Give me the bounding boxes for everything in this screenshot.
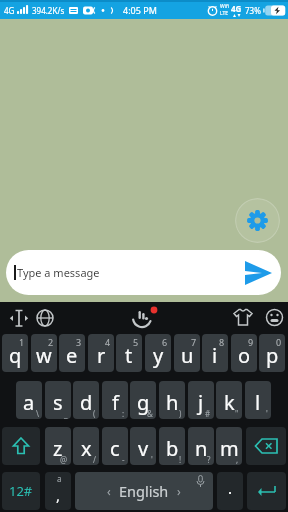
button[interactable]: e bbox=[59, 334, 85, 372]
staticText: 6 bbox=[162, 336, 168, 348]
button[interactable]: Type a message bbox=[6, 250, 281, 295]
button[interactable]: b bbox=[159, 427, 185, 465]
button[interactable]: , bbox=[45, 472, 71, 510]
staticText: ' bbox=[266, 408, 268, 419]
button[interactable]: l bbox=[245, 381, 271, 419]
staticText: 4G bbox=[231, 3, 242, 14]
staticText: & bbox=[147, 408, 153, 419]
staticText: o bbox=[238, 342, 251, 369]
staticText: Wifi bbox=[220, 3, 229, 10]
button[interactable]: ‹ bbox=[75, 472, 213, 510]
staticText: p bbox=[266, 342, 279, 369]
staticText: 2 bbox=[48, 336, 54, 348]
staticText: y bbox=[153, 342, 164, 369]
staticText: , bbox=[236, 454, 239, 465]
button[interactable]: d bbox=[73, 381, 99, 419]
button[interactable]: j bbox=[188, 381, 214, 419]
button[interactable]: w bbox=[31, 334, 57, 372]
staticText: : bbox=[122, 408, 125, 419]
button[interactable] bbox=[36, 309, 54, 327]
staticText: English bbox=[119, 481, 169, 501]
staticText: ‹ bbox=[107, 483, 111, 499]
button[interactable]: i bbox=[202, 334, 228, 372]
button[interactable]: k bbox=[216, 381, 242, 419]
staticText: 1 bbox=[19, 336, 25, 348]
button[interactable]: m bbox=[216, 427, 242, 465]
staticText: 4 bbox=[105, 336, 111, 348]
button[interactable]: t bbox=[116, 334, 142, 372]
button[interactable]: r bbox=[88, 334, 114, 372]
staticText: z bbox=[53, 435, 63, 462]
staticText: 5 bbox=[133, 336, 139, 348]
staticText: t bbox=[125, 342, 133, 369]
button[interactable]: q bbox=[2, 334, 28, 372]
staticText: 8 bbox=[219, 336, 225, 348]
staticText: LTE bbox=[220, 10, 229, 17]
staticText: e bbox=[66, 342, 78, 369]
button[interactable] bbox=[265, 308, 284, 327]
button[interactable]: y bbox=[145, 334, 171, 372]
button[interactable]: o bbox=[231, 334, 257, 372]
staticText: f bbox=[112, 389, 119, 416]
staticText: 4G bbox=[4, 5, 15, 16]
staticText: c bbox=[110, 435, 120, 462]
staticText: / bbox=[93, 454, 96, 465]
staticText: 394.2K/s bbox=[32, 5, 65, 16]
staticText: i bbox=[212, 342, 218, 369]
staticText: 4:05 PM bbox=[123, 4, 157, 16]
button[interactable] bbox=[7, 306, 31, 330]
staticText: d bbox=[80, 389, 93, 416]
button[interactable]: z bbox=[45, 427, 71, 465]
staticText: n bbox=[195, 435, 208, 462]
button[interactable]: v bbox=[130, 427, 156, 465]
button[interactable]: x bbox=[73, 427, 99, 465]
staticText: ' bbox=[151, 454, 153, 465]
staticText: # bbox=[205, 408, 211, 419]
staticText: ) bbox=[179, 408, 182, 419]
button[interactable]: h bbox=[159, 381, 185, 419]
button[interactable]: c bbox=[102, 427, 128, 465]
staticText: - bbox=[122, 454, 125, 465]
staticText: a bbox=[57, 473, 62, 484]
button[interactable]: g bbox=[130, 381, 156, 419]
staticText: Type a message bbox=[17, 265, 100, 280]
staticText: @ bbox=[60, 454, 68, 465]
button[interactable]: f bbox=[102, 381, 128, 419]
button[interactable]: s bbox=[45, 381, 71, 419]
staticText: b bbox=[166, 435, 179, 462]
staticText: " bbox=[235, 408, 239, 419]
button[interactable]: 12# bbox=[2, 472, 40, 510]
button[interactable] bbox=[233, 308, 253, 327]
staticText: v bbox=[138, 435, 149, 462]
staticText: 7 bbox=[191, 336, 197, 348]
staticText: w bbox=[36, 342, 52, 369]
staticText: › bbox=[177, 483, 181, 499]
staticText: m bbox=[220, 435, 239, 462]
staticText: q bbox=[9, 342, 22, 369]
button[interactable] bbox=[2, 427, 40, 465]
staticText: \ bbox=[36, 408, 39, 419]
staticText: j bbox=[198, 389, 204, 416]
staticText: k bbox=[224, 389, 235, 416]
staticText: 73% bbox=[245, 5, 261, 16]
staticText: g bbox=[137, 389, 150, 416]
button[interactable] bbox=[217, 472, 243, 510]
button[interactable] bbox=[246, 427, 286, 465]
button[interactable] bbox=[247, 472, 286, 510]
staticText: a bbox=[23, 389, 35, 416]
staticText: _ bbox=[64, 408, 68, 419]
staticText: 12# bbox=[9, 482, 33, 500]
button[interactable]: a bbox=[16, 381, 42, 419]
staticText: ( bbox=[93, 408, 96, 419]
button[interactable]: u bbox=[174, 334, 200, 372]
button[interactable] bbox=[130, 305, 158, 331]
staticText: s bbox=[53, 389, 63, 416]
button[interactable] bbox=[235, 198, 280, 243]
staticText: u bbox=[181, 342, 194, 369]
staticText: 0 bbox=[276, 336, 282, 348]
staticText: r bbox=[97, 342, 106, 369]
staticText: l bbox=[255, 389, 261, 416]
button[interactable]: n bbox=[188, 427, 214, 465]
button[interactable]: p bbox=[259, 334, 285, 372]
staticText: ? bbox=[207, 454, 211, 465]
